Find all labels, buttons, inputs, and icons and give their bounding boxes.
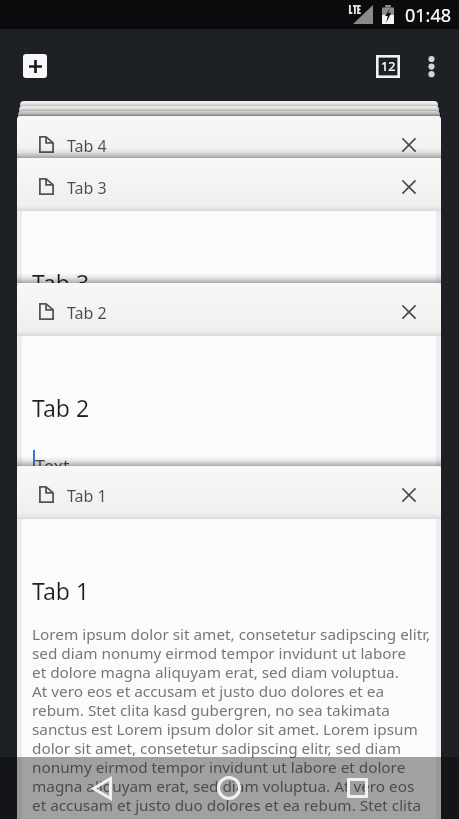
- button[interactable]: Tab 4: [17, 116, 441, 819]
- staticText: Tab 1: [32, 575, 90, 606]
- staticText: Tab 4: [67, 135, 107, 157]
- staticText: Tab 2: [67, 302, 107, 324]
- staticText: Tab 3: [67, 177, 107, 199]
- button[interactable]: New tab: [23, 54, 47, 78]
- button[interactable]: Close Tab 4: [386, 122, 432, 168]
- staticText: Text: [35, 454, 70, 479]
- button[interactable]: Close Tab 3: [386, 164, 432, 210]
- staticText: Tab 3: [32, 267, 90, 298]
- button[interactable]: Home: [201, 760, 257, 816]
- button[interactable]: Tabs: [376, 55, 400, 78]
- button[interactable]: Close Tab 1: [386, 472, 432, 518]
- staticText: Lorem ipsum dolor sit amet, consetetur s…: [32, 274, 431, 503]
- button[interactable]: Back: [74, 760, 130, 816]
- button[interactable]: Tab 2: [17, 283, 441, 819]
- staticText: Tab 1: [67, 485, 107, 507]
- staticText: Lorem ipsum dolor sit amet, consetetur s…: [32, 316, 431, 545]
- button[interactable]: Tab 1: [17, 466, 441, 819]
- staticText: Lorem ipsum dolor sit amet, consetetur s…: [32, 624, 431, 819]
- staticText: Tab 2: [32, 392, 90, 423]
- button[interactable]: More options: [415, 50, 447, 82]
- staticText: 12: [381, 58, 396, 75]
- button[interactable]: Close Tab 2: [386, 289, 432, 335]
- button[interactable]: Tab 3: [17, 158, 441, 819]
- staticText: 01:48: [405, 3, 452, 28]
- button[interactable]: Recents: [329, 760, 385, 816]
